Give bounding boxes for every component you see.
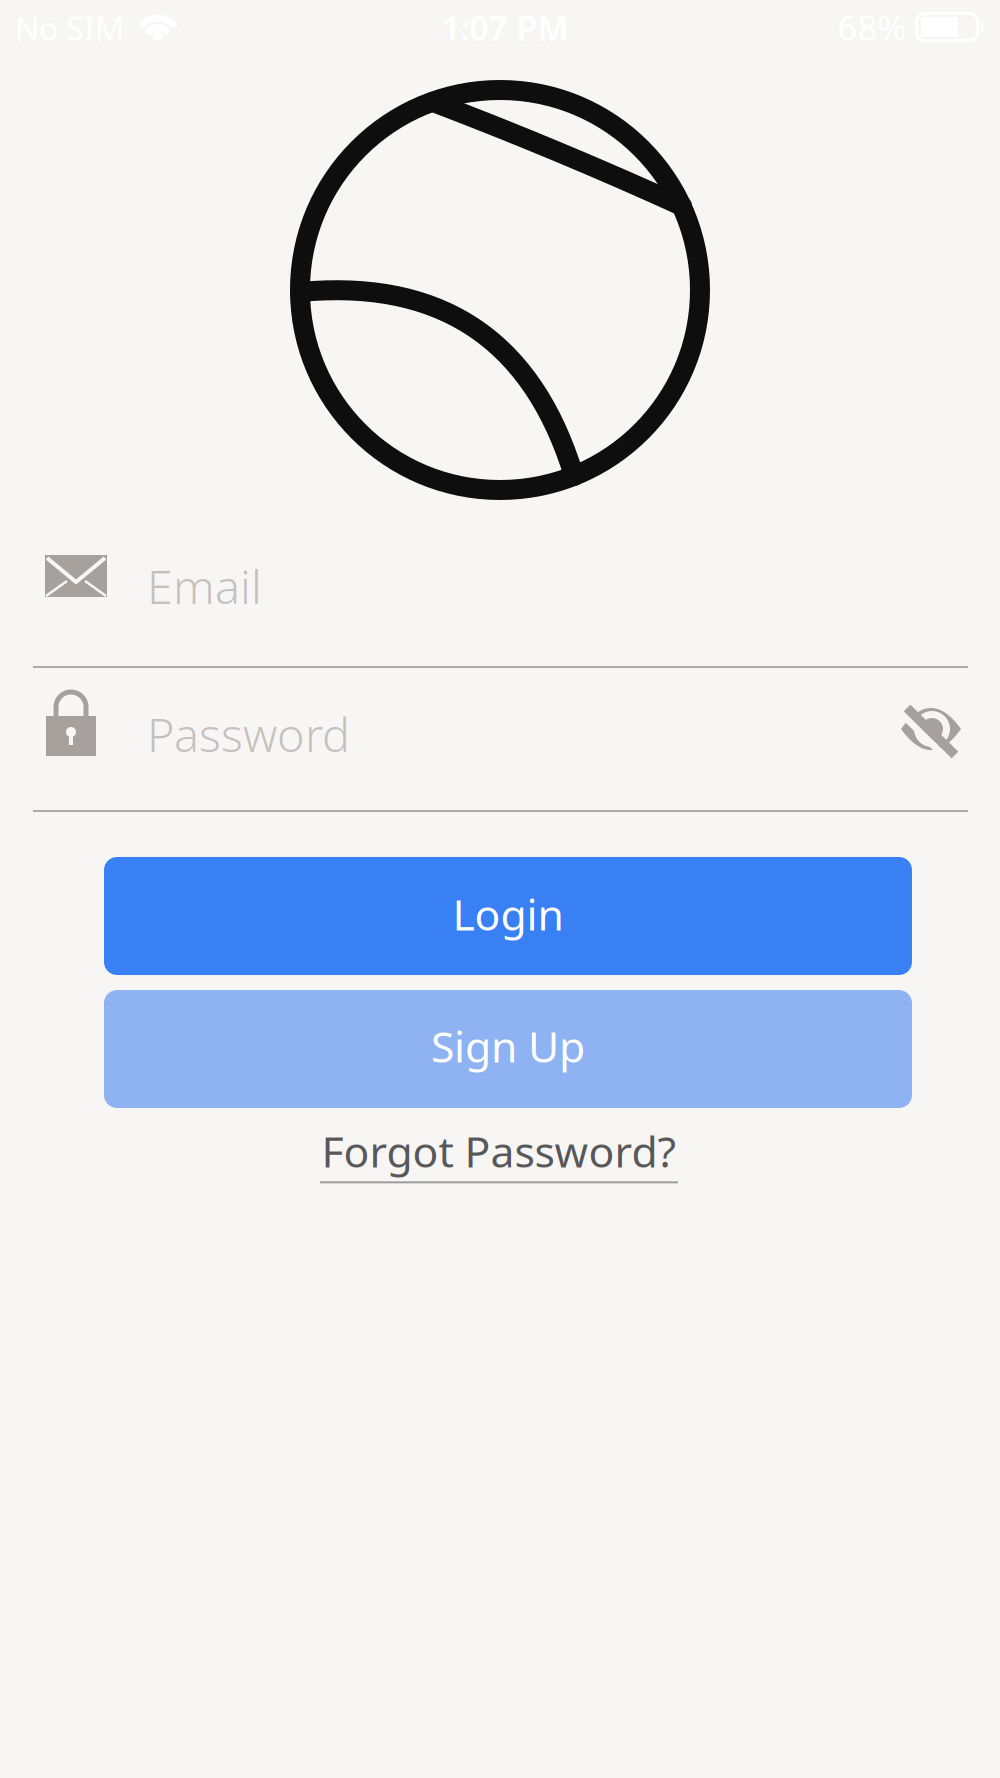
staticText: 1:07 PM: [441, 6, 568, 50]
staticText: 68%: [837, 4, 906, 50]
button[interactable]: Email: [0, 523, 1000, 655]
button[interactable]: Forgot Password?: [320, 1123, 678, 1183]
staticText: Forgot Password?: [321, 1123, 676, 1179]
staticText: Login: [452, 886, 563, 942]
staticText: Sign Up: [431, 1018, 585, 1074]
staticText: Email: [147, 555, 262, 617]
staticText: Password: [147, 703, 350, 765]
button[interactable]: Show password: [893, 692, 969, 768]
staticText: No SIM: [15, 7, 124, 49]
button[interactable]: Sign Up: [104, 990, 912, 1108]
button[interactable]: Login: [104, 857, 912, 975]
button[interactable]: Password: [0, 675, 1000, 807]
